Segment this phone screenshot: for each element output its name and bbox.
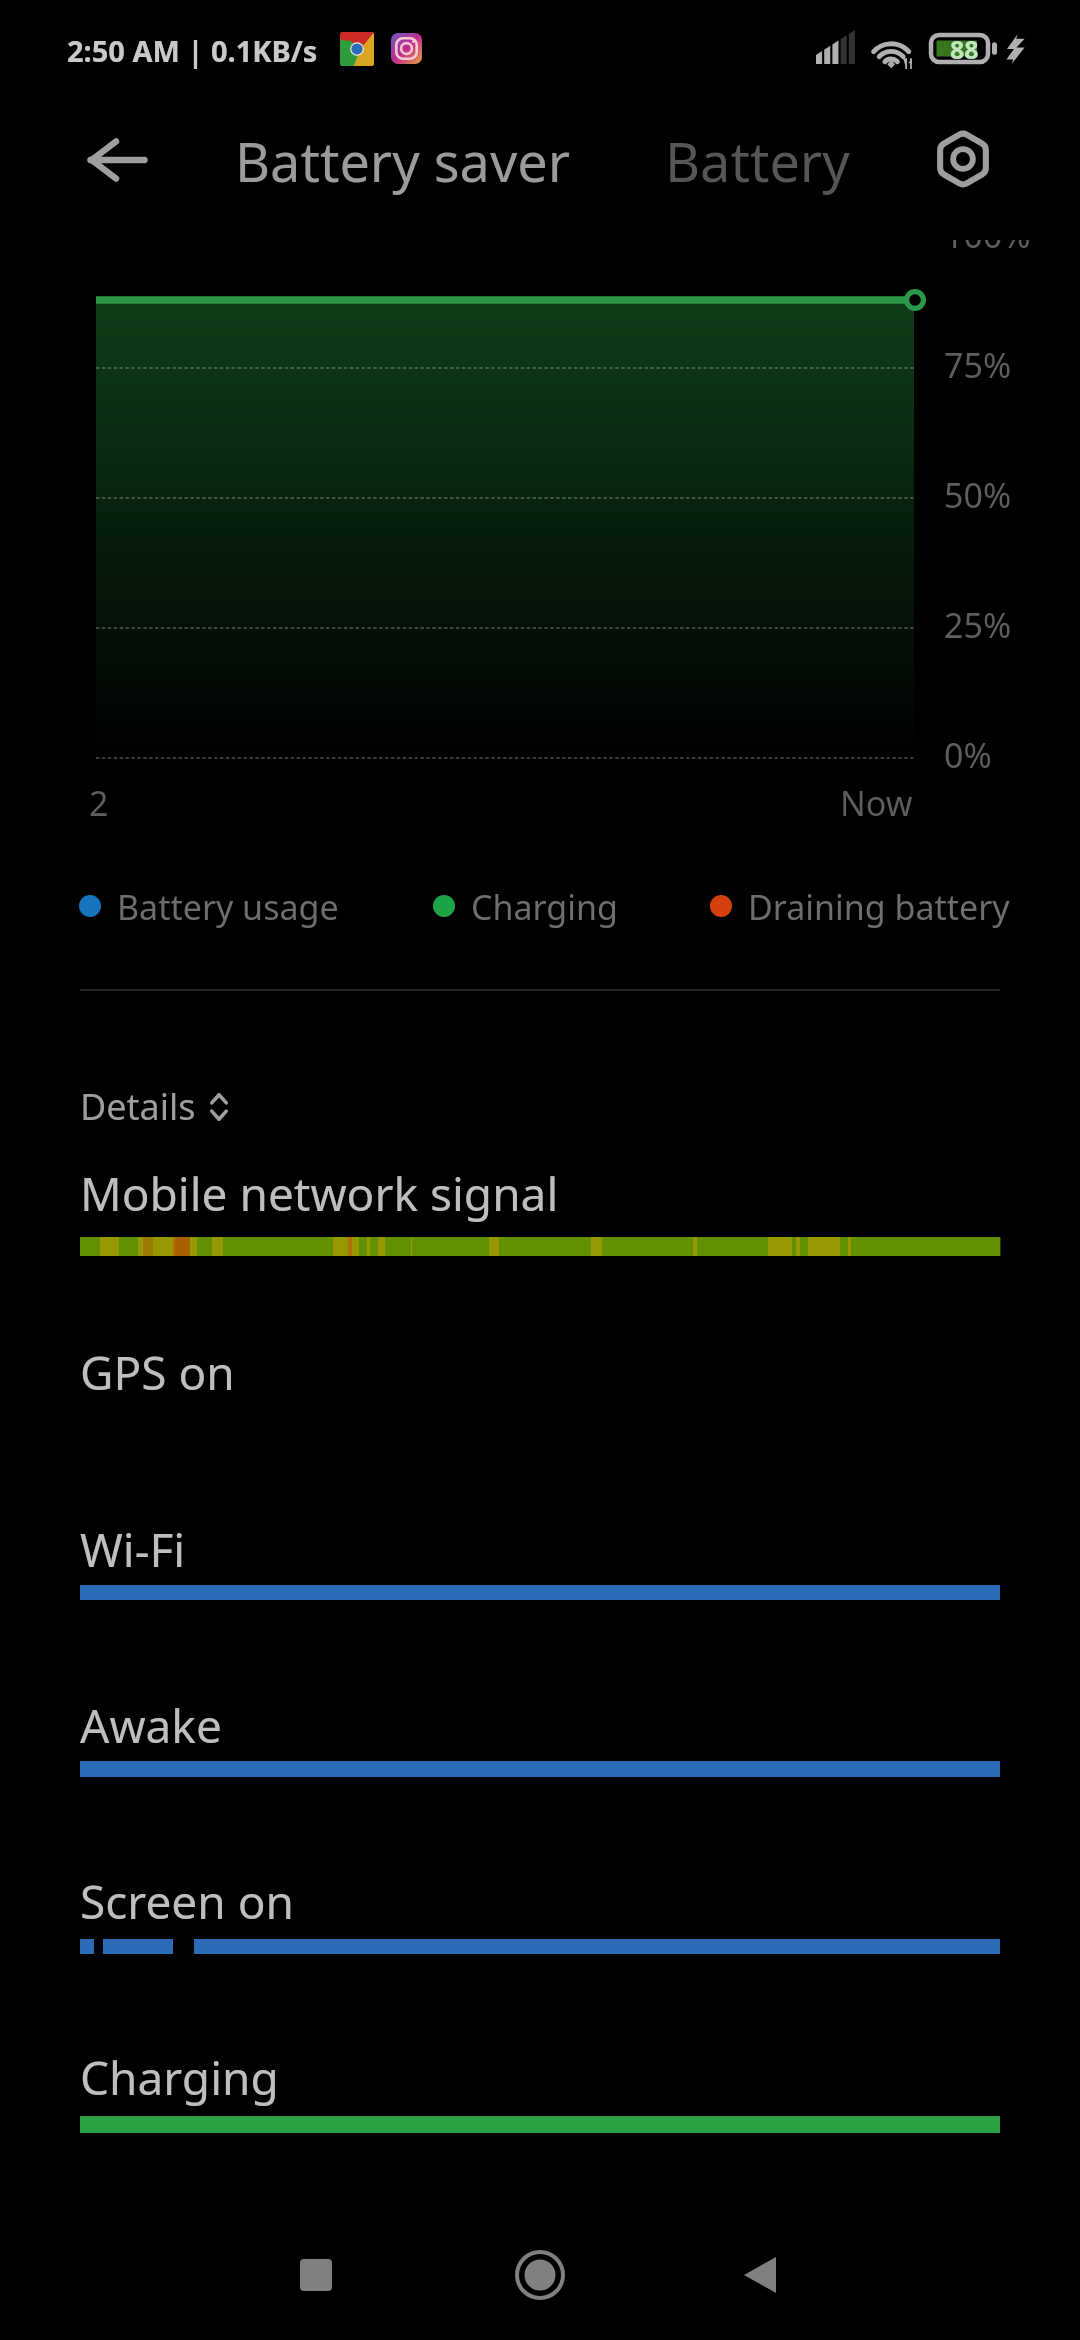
staticText: 2:50 AM | 0.1KB/s <box>67 31 318 70</box>
staticText: Charging <box>80 2046 279 2109</box>
staticText: 88 <box>950 32 979 63</box>
button[interactable]: Back <box>720 2235 800 2315</box>
staticText: Battery usage <box>117 884 339 930</box>
staticText: 50% <box>944 472 1012 516</box>
staticText: Battery <box>665 124 850 198</box>
button[interactable]: Battery saver <box>235 124 571 198</box>
button[interactable]: Recent apps <box>276 2235 356 2315</box>
staticText: Screen on <box>80 1870 294 1933</box>
staticText: 0% <box>944 732 992 776</box>
button[interactable]: Home <box>500 2235 580 2315</box>
staticText: Wi-Fi <box>80 1518 186 1581</box>
staticText: GPS on <box>80 1341 235 1404</box>
button[interactable]: Details <box>80 1082 222 1131</box>
staticText: Mobile network signal <box>80 1162 559 1225</box>
button[interactable]: Back <box>78 122 154 198</box>
staticText: Details <box>80 1082 196 1131</box>
staticText: Battery saver <box>235 124 571 198</box>
staticText: 2 <box>89 780 109 826</box>
button[interactable]: Battery <box>665 124 850 198</box>
staticText: 25% <box>944 602 1012 646</box>
staticText: Now <box>840 780 913 826</box>
staticText: 75% <box>944 342 1012 386</box>
staticText: Charging <box>471 884 618 930</box>
staticText: Awake <box>80 1694 222 1757</box>
staticText: Draining battery <box>748 884 1010 930</box>
staticText: 100% <box>944 240 1031 256</box>
button[interactable]: Settings <box>925 121 1001 197</box>
